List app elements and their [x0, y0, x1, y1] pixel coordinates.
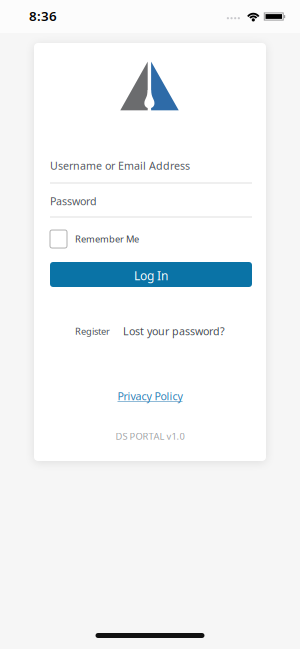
staticText: DS PORTAL v1.0 [115, 430, 184, 442]
button[interactable]: Password [50, 194, 252, 217]
staticText: Username or Email Address [50, 158, 190, 173]
button[interactable]: Log In [50, 262, 252, 287]
staticText: 8:36 [29, 7, 57, 25]
button[interactable]: Lost your password? [123, 324, 225, 338]
staticText: Remember Me [75, 233, 139, 245]
staticText: Register [75, 325, 110, 337]
button[interactable]: Remember Me [50, 230, 139, 248]
staticText: Log In [134, 267, 168, 283]
staticText: Privacy Policy [117, 389, 182, 403]
button[interactable]: Register [75, 325, 110, 337]
staticText: Password [50, 194, 97, 208]
button[interactable]: Privacy Policy [117, 389, 182, 403]
staticText: Lost your password? [123, 324, 225, 338]
button[interactable]: Username or Email Address [50, 158, 252, 183]
